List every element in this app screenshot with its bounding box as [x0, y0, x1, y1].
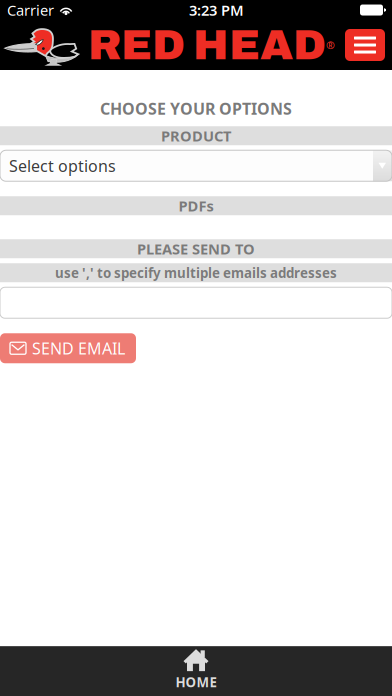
staticText: PLEASE SEND TO [137, 239, 255, 258]
staticText: ® [326, 38, 335, 52]
staticText: Select options [9, 155, 116, 176]
staticText: use ',' to specify multiple emails addre… [55, 264, 337, 282]
button[interactable]: HOME [146, 647, 246, 696]
staticText: PRODUCT [161, 126, 231, 145]
staticText: RED HEAD [88, 22, 326, 68]
button[interactable]: Menu [345, 29, 385, 61]
staticText: PDFs [178, 196, 213, 215]
staticText: SEND EMAIL [32, 338, 125, 359]
staticText: CHOOSE YOUR OPTIONS [100, 98, 292, 119]
button[interactable]: Select options [0, 150, 392, 181]
button[interactable]: SEND EMAIL [0, 333, 136, 363]
staticText: HOME [175, 673, 216, 691]
staticText: Carrier [7, 0, 54, 20]
staticText: 3:23 PM [189, 0, 244, 20]
